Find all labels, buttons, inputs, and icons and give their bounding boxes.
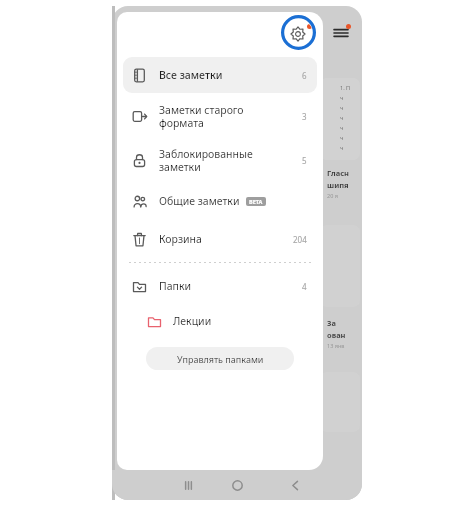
button[interactable]: Settings bbox=[283, 19, 313, 49]
staticText: 20 я bbox=[327, 192, 338, 199]
button[interactable]: Заметки старого формата bbox=[123, 95, 317, 137]
staticText: Общие заметки bbox=[159, 194, 240, 208]
staticText: Управлять папками bbox=[177, 353, 264, 365]
staticText: 5 bbox=[302, 155, 307, 166]
staticText: Лекции bbox=[173, 314, 212, 328]
button[interactable]: Управлять папками bbox=[146, 347, 294, 370]
staticText: Заметки старого формата bbox=[159, 103, 244, 130]
staticText: ч bbox=[340, 114, 344, 121]
staticText: 4 bbox=[302, 281, 307, 292]
staticText: Корзина bbox=[159, 232, 202, 246]
button[interactable]: Home bbox=[222, 470, 252, 500]
button[interactable]: Все заметки bbox=[123, 57, 317, 93]
button[interactable]: Папки bbox=[123, 268, 317, 304]
staticText: За bbox=[327, 318, 336, 328]
button[interactable]: Recents bbox=[170, 470, 206, 500]
staticText: ован bbox=[327, 330, 346, 340]
staticText: ч bbox=[340, 104, 344, 111]
staticText: Все заметки bbox=[159, 68, 223, 82]
staticText: ч bbox=[340, 144, 344, 151]
staticText: ч bbox=[340, 134, 344, 141]
staticText: ч bbox=[340, 124, 344, 131]
staticText: Гласн bbox=[327, 168, 349, 178]
staticText: BETA bbox=[249, 198, 263, 205]
button[interactable]: Корзина bbox=[123, 221, 317, 257]
button[interactable]: Back bbox=[280, 470, 310, 500]
button[interactable]: Заблокированные заметки bbox=[123, 139, 317, 181]
button[interactable]: Общие заметки bbox=[123, 183, 317, 219]
staticText: ч bbox=[340, 94, 344, 101]
staticText: шипя bbox=[327, 180, 349, 190]
staticText: 6 bbox=[302, 70, 307, 81]
staticText: 1. П bbox=[340, 84, 351, 91]
staticText: 3 bbox=[302, 111, 307, 122]
button[interactable]: Лекции bbox=[117, 305, 323, 337]
staticText: 13 янв bbox=[327, 342, 345, 349]
staticText: Заблокированные заметки bbox=[159, 147, 253, 174]
staticText: 204 bbox=[293, 234, 307, 245]
button[interactable]: Menu bbox=[330, 22, 352, 44]
staticText: Папки bbox=[159, 279, 191, 293]
